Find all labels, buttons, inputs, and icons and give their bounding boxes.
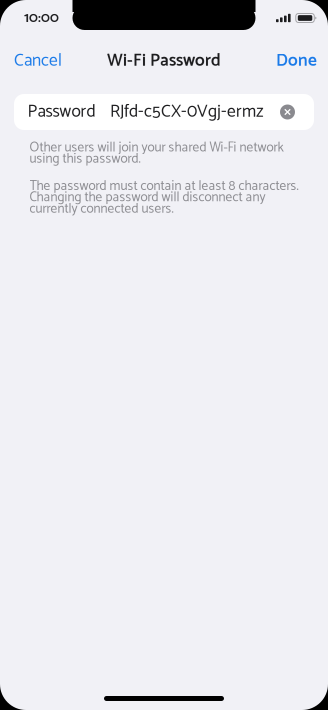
staticText: The password must contain at least 8 cha… bbox=[29, 176, 298, 220]
button[interactable]: Clear password bbox=[274, 95, 301, 129]
staticText: RJfd-c5CX-0Vgj-ermz bbox=[110, 98, 264, 126]
staticText: 10:00 bbox=[24, 6, 59, 30]
button[interactable]: Done bbox=[264, 39, 328, 83]
staticText: Password bbox=[27, 98, 95, 126]
staticText: Cancel bbox=[14, 47, 62, 75]
staticText: Done bbox=[276, 47, 317, 75]
button[interactable]: Cancel bbox=[0, 39, 74, 83]
staticText: Wi-Fi Password bbox=[107, 47, 221, 75]
staticText: Other users will join your shared Wi-Fi … bbox=[29, 137, 283, 170]
